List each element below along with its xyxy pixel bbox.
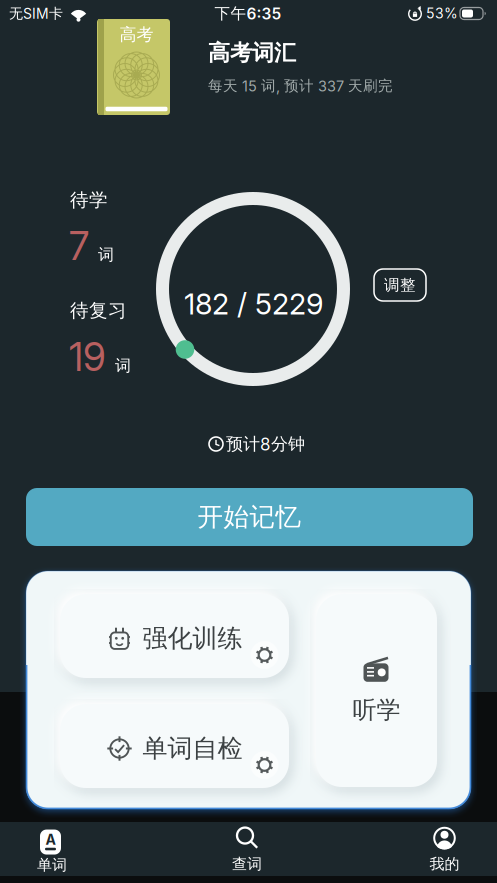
staticText: 7 [69, 223, 89, 269]
staticText: 单词 [37, 856, 67, 874]
button[interactable]: 查词 [207, 824, 287, 876]
button[interactable]: 强化训练 [60, 594, 289, 678]
staticText: 词 [98, 245, 114, 265]
button[interactable]: 单词自检 [60, 704, 289, 788]
staticText: 强化训练 [142, 623, 242, 654]
staticText: 高考 [119, 24, 153, 45]
button[interactable]: 调整 [374, 269, 426, 301]
button[interactable]: 我的 [404, 824, 484, 876]
staticText: A [45, 831, 55, 848]
staticText: 无SIM卡 [9, 5, 63, 22]
staticText: 我的 [429, 855, 459, 873]
staticText: 待复习 [70, 299, 127, 322]
staticText: 每天 15 词, 预计 337 天刷完 [208, 77, 393, 95]
staticText: 19 [69, 334, 106, 380]
staticText: 待学 [70, 188, 108, 212]
button[interactable]: 听学 [316, 594, 437, 787]
staticText: 调整 [384, 275, 416, 295]
staticText: 听学 [352, 695, 400, 725]
button[interactable]: 开始记忆 [26, 488, 473, 546]
staticText: 182 / 5229 [184, 286, 324, 322]
staticText: 下午6:35 [214, 4, 281, 23]
button[interactable]: A [12, 826, 92, 878]
staticText: 预计8分钟 [226, 433, 305, 455]
staticText: 开始记忆 [197, 501, 301, 533]
staticText: 高考词汇 [208, 39, 296, 67]
staticText: 单词自检 [142, 733, 242, 764]
staticText: 查词 [232, 855, 262, 873]
staticText: 词 [115, 356, 131, 376]
button[interactable]: 强化训练设置 [254, 645, 274, 665]
button[interactable]: 高考 [0, 0, 497, 130]
button[interactable]: 单词自检设置 [254, 755, 274, 775]
staticText: 53% [426, 5, 458, 22]
